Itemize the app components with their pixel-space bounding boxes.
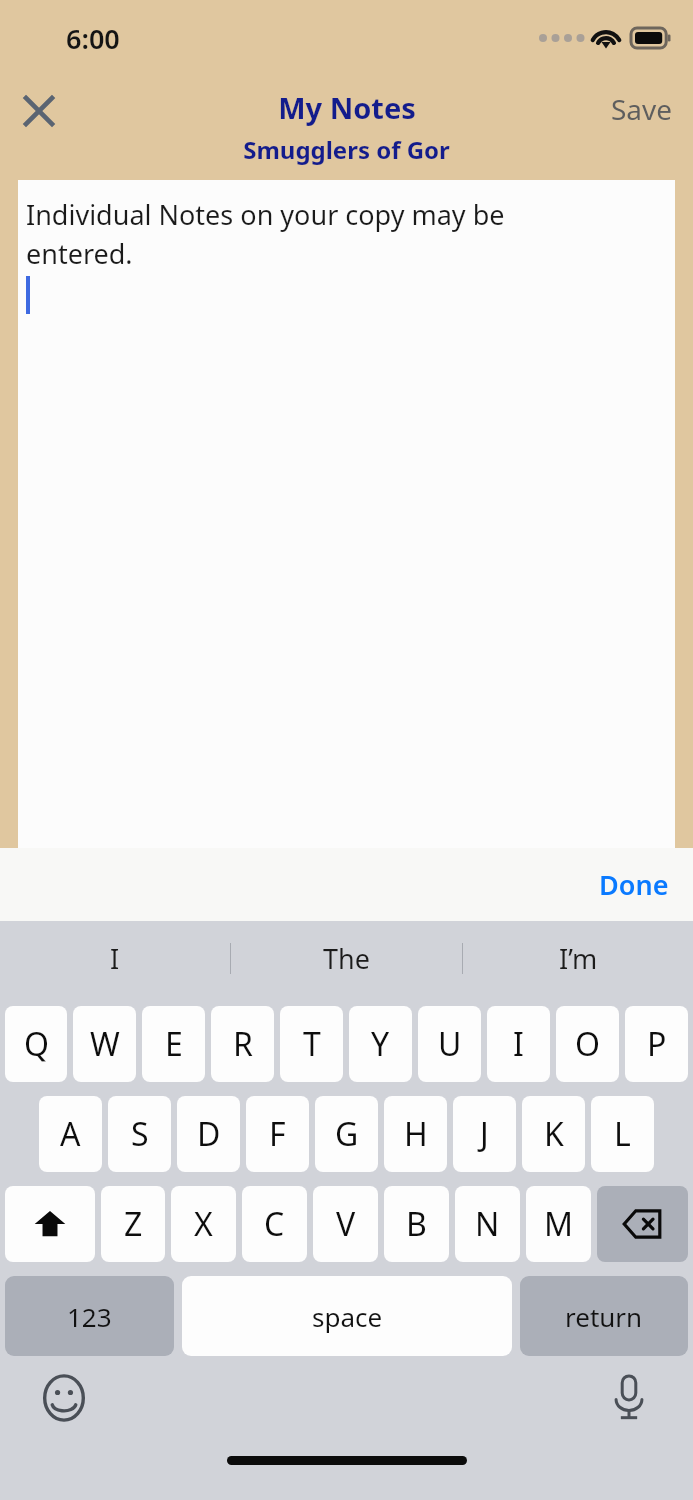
button[interactable]: I: [0, 921, 230, 996]
staticText: L: [614, 1112, 631, 1156]
staticText: Save: [611, 90, 673, 128]
button[interactable]: Done: [589, 858, 679, 911]
button[interactable]: N: [455, 1186, 520, 1262]
staticText: H: [404, 1112, 428, 1156]
button[interactable]: Dictation: [599, 1368, 659, 1428]
staticText: Q: [24, 1022, 49, 1066]
button[interactable]: L: [591, 1096, 654, 1172]
button[interactable]: Backspace: [597, 1186, 688, 1262]
button[interactable]: Individual Notes on your copy may be ent…: [18, 180, 675, 848]
button[interactable]: 123: [5, 1276, 174, 1356]
staticText: My Notes: [278, 88, 416, 127]
button[interactable]: P: [625, 1006, 688, 1082]
staticText: F: [269, 1112, 286, 1156]
staticText: G: [335, 1112, 359, 1156]
staticText: U: [438, 1022, 462, 1066]
staticText: Individual Notes on your copy may be ent…: [26, 196, 505, 272]
button[interactable]: U: [418, 1006, 481, 1082]
staticText: A: [60, 1112, 81, 1156]
button[interactable]: R: [211, 1006, 274, 1082]
staticText: T: [303, 1022, 321, 1066]
button[interactable]: I: [487, 1006, 550, 1082]
button[interactable]: K: [522, 1096, 585, 1172]
button[interactable]: S: [108, 1096, 171, 1172]
staticText: Z: [124, 1202, 143, 1246]
button[interactable]: X: [171, 1186, 236, 1262]
staticText: E: [165, 1022, 183, 1066]
staticText: O: [575, 1022, 600, 1066]
button[interactable]: A: [39, 1096, 102, 1172]
button[interactable]: M: [526, 1186, 591, 1262]
button[interactable]: Emoji keyboard: [34, 1368, 94, 1428]
button[interactable]: I’m: [463, 921, 693, 996]
button[interactable]: O: [556, 1006, 619, 1082]
staticText: M: [544, 1202, 574, 1246]
button[interactable]: V: [313, 1186, 378, 1262]
button[interactable]: J: [453, 1096, 516, 1172]
button[interactable]: B: [384, 1186, 449, 1262]
button[interactable]: D: [177, 1096, 240, 1172]
button[interactable]: Z: [101, 1186, 165, 1262]
staticText: space: [312, 1299, 383, 1334]
button[interactable]: W: [73, 1006, 136, 1082]
staticText: I’m: [559, 940, 598, 977]
staticText: The: [323, 940, 370, 977]
staticText: P: [647, 1022, 667, 1066]
button[interactable]: Close: [8, 80, 70, 142]
staticText: 6:00: [66, 20, 120, 57]
staticText: Smugglers of Gor: [243, 133, 450, 166]
button[interactable]: space: [182, 1276, 512, 1356]
staticText: S: [131, 1112, 149, 1156]
button[interactable]: return: [520, 1276, 688, 1356]
staticText: X: [194, 1202, 213, 1246]
staticText: return: [565, 1299, 643, 1334]
button[interactable]: Q: [5, 1006, 67, 1082]
staticText: Y: [371, 1022, 390, 1066]
button[interactable]: C: [242, 1186, 307, 1262]
staticText: B: [406, 1202, 427, 1246]
staticText: J: [480, 1112, 489, 1156]
button[interactable]: Y: [349, 1006, 412, 1082]
staticText: V: [336, 1202, 356, 1246]
staticText: C: [264, 1202, 285, 1246]
staticText: K: [544, 1112, 564, 1156]
button[interactable]: G: [315, 1096, 378, 1172]
staticText: D: [197, 1112, 221, 1156]
staticText: R: [233, 1022, 253, 1066]
staticText: W: [90, 1022, 120, 1066]
button[interactable]: H: [384, 1096, 447, 1172]
button[interactable]: The: [231, 921, 462, 996]
button[interactable]: E: [142, 1006, 205, 1082]
staticText: I: [110, 940, 120, 977]
staticText: I: [513, 1022, 524, 1066]
button[interactable]: Shift: [5, 1186, 95, 1262]
button[interactable]: T: [280, 1006, 343, 1082]
staticText: Done: [599, 866, 669, 903]
staticText: 123: [67, 1299, 112, 1334]
staticText: N: [475, 1202, 500, 1246]
button[interactable]: F: [246, 1096, 309, 1172]
button[interactable]: Save: [607, 84, 677, 134]
